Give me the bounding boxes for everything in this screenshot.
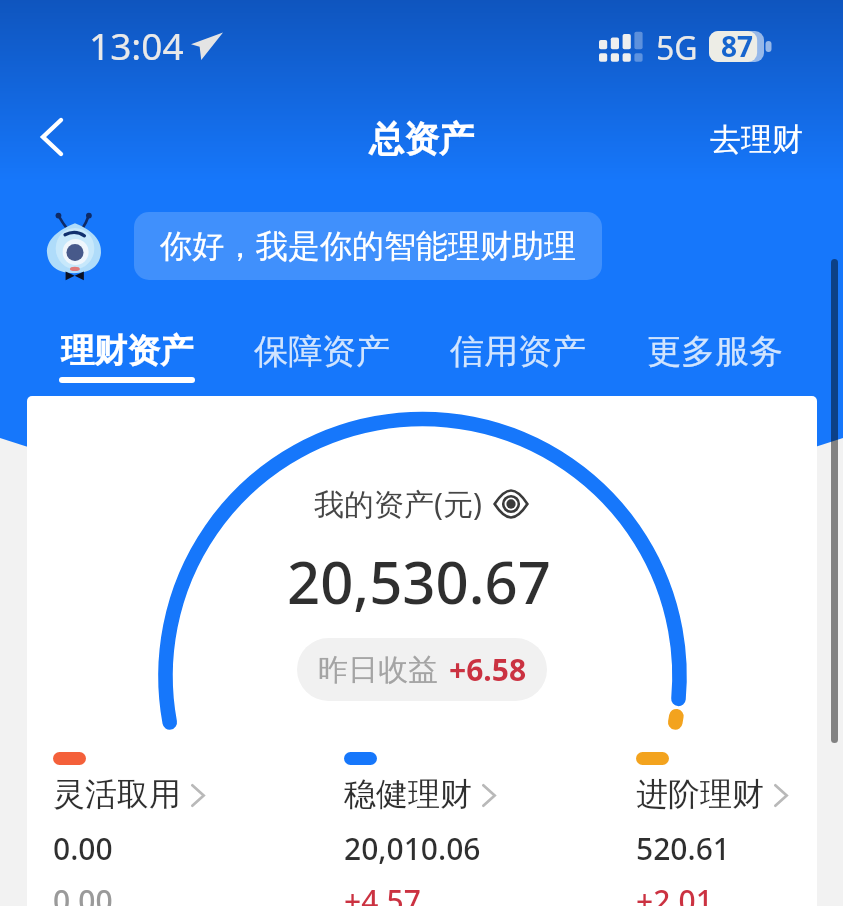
staticText: 0.00 <box>53 880 113 906</box>
staticText: 稳健理财 <box>344 774 472 814</box>
button[interactable]: Back <box>16 96 88 178</box>
staticText: 昨日收益 <box>318 651 438 689</box>
staticText: +4.57 <box>344 880 421 906</box>
staticText: 进阶理财 <box>636 774 764 814</box>
staticText: 去理财 <box>710 120 803 159</box>
button[interactable]: 昨日收益 <box>297 638 547 701</box>
staticText: 更多服务 <box>647 330 783 373</box>
staticText: 13:04 <box>89 20 184 70</box>
staticText: 我的资产(元) <box>314 483 482 524</box>
staticText: +6.58 <box>449 649 527 690</box>
button[interactable]: 理财资产 <box>59 330 195 383</box>
staticText: 0.00 <box>53 828 113 869</box>
button[interactable]: 进阶理财 <box>636 774 788 814</box>
staticText: 20,010.06 <box>344 828 481 869</box>
staticText: 信用资产 <box>450 330 586 373</box>
button[interactable]: 保障资产 <box>254 330 390 373</box>
button[interactable]: 去理财 <box>696 98 816 180</box>
staticText: 总资产 <box>369 117 474 161</box>
staticText: 理财资产 <box>61 330 193 372</box>
staticText: 520.61 <box>636 828 730 869</box>
button[interactable]: 你好，我是你的智能理财助理 <box>134 212 602 280</box>
button[interactable]: 更多服务 <box>647 330 783 373</box>
button[interactable]: 灵活取用 <box>53 774 205 814</box>
staticText: 你好，我是你的智能理财助理 <box>160 226 576 266</box>
staticText: 20,530.67 <box>287 542 551 621</box>
staticText: 保障资产 <box>254 330 390 373</box>
staticText: +2.01 <box>636 880 713 906</box>
staticText: 5G <box>656 26 698 70</box>
staticText: 87 <box>721 27 754 65</box>
button[interactable]: Toggle amount visibility <box>489 487 533 521</box>
staticText: 灵活取用 <box>53 774 181 814</box>
button[interactable]: 信用资产 <box>450 330 586 373</box>
button[interactable]: 稳健理财 <box>344 774 496 814</box>
